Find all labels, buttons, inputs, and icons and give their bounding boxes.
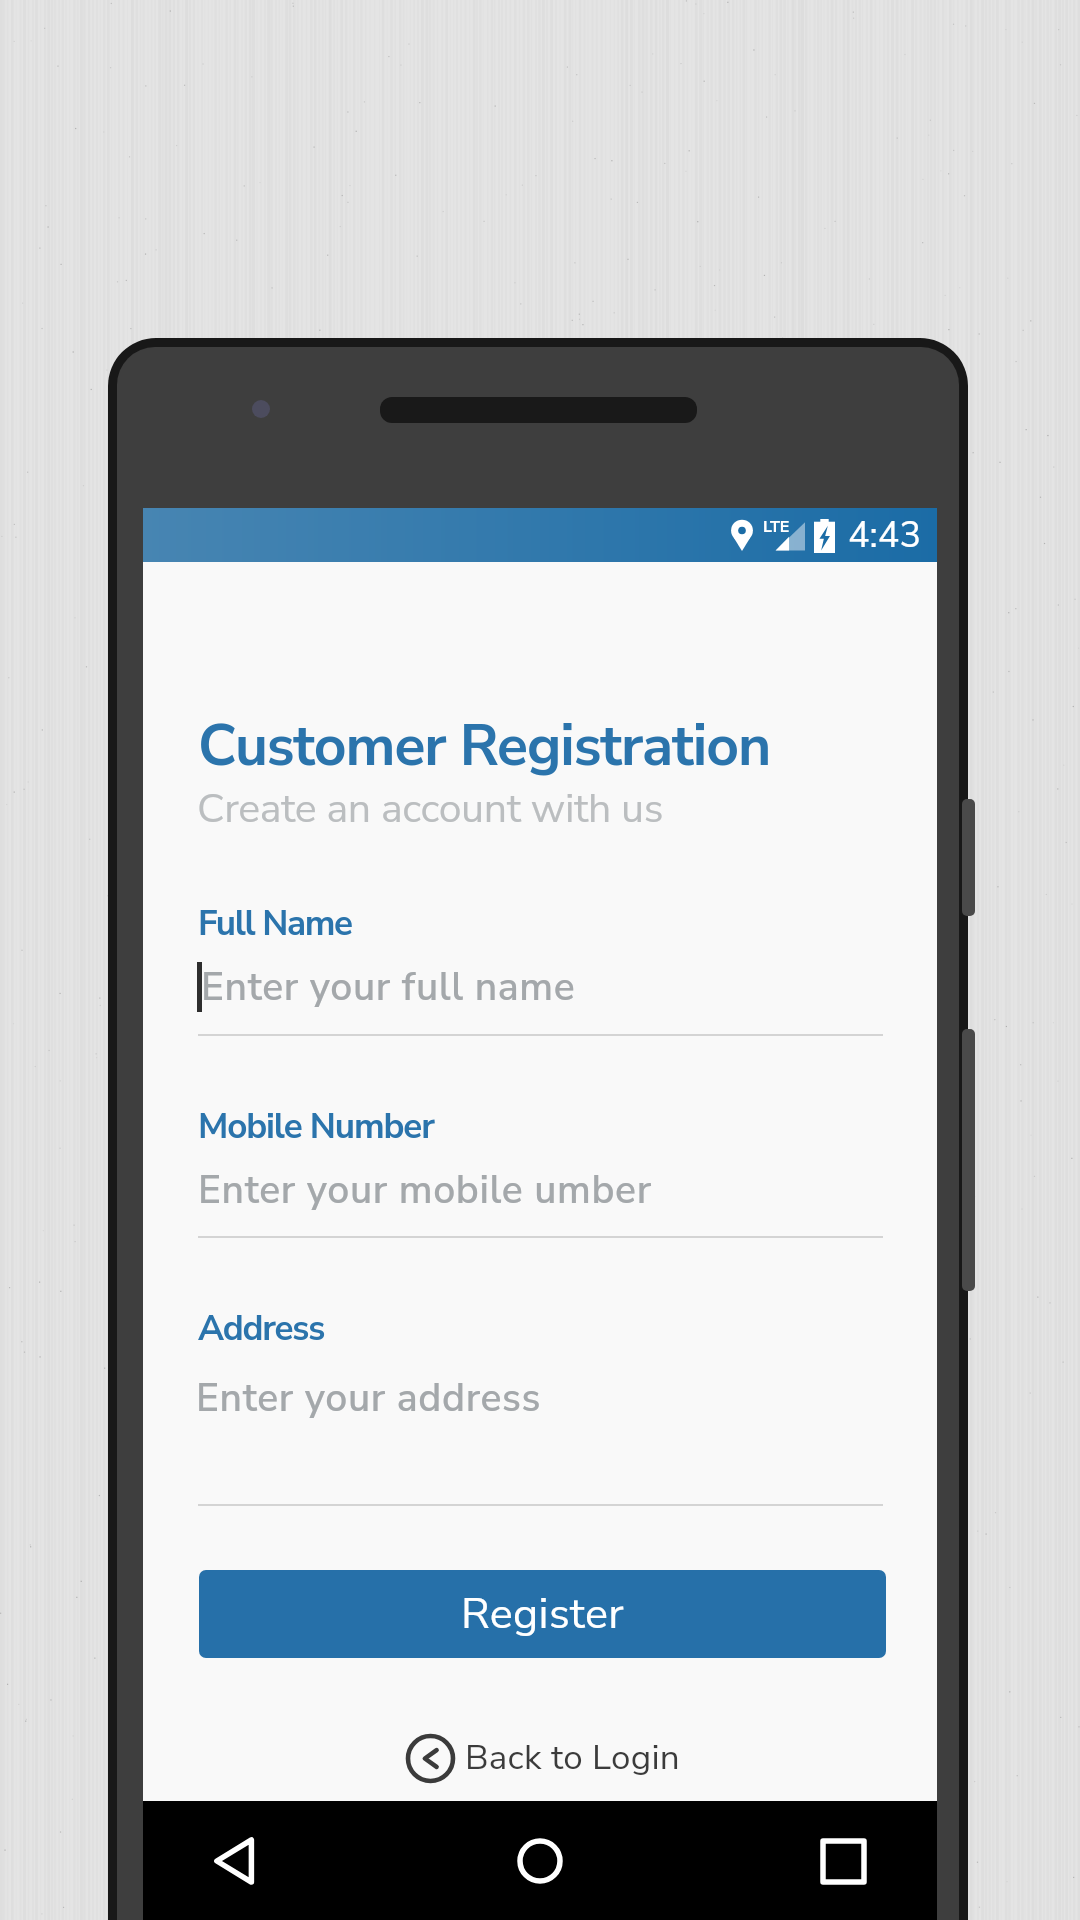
button[interactable]: Back to Login <box>405 1718 685 1798</box>
staticText: Back to Login <box>465 1734 680 1782</box>
staticText: Enter your full name <box>201 961 576 1014</box>
staticText: Full Name <box>198 900 352 948</box>
button[interactable]: Back <box>187 1811 287 1911</box>
staticText: LTE <box>763 516 790 538</box>
staticText: Mobile Number <box>198 1103 434 1151</box>
button[interactable]: Register <box>199 1570 886 1658</box>
staticText: Create an account with us <box>197 781 664 837</box>
staticText: Customer Registration <box>198 707 771 785</box>
staticText: 4:43 <box>848 511 922 560</box>
staticText: Register <box>461 1585 625 1644</box>
button[interactable]: Home <box>490 1811 590 1911</box>
staticText: Enter your address <box>196 1372 542 1425</box>
staticText: Enter your mobile umber <box>198 1164 652 1217</box>
button[interactable]: Recent apps <box>793 1811 893 1911</box>
staticText: Address <box>198 1305 325 1353</box>
